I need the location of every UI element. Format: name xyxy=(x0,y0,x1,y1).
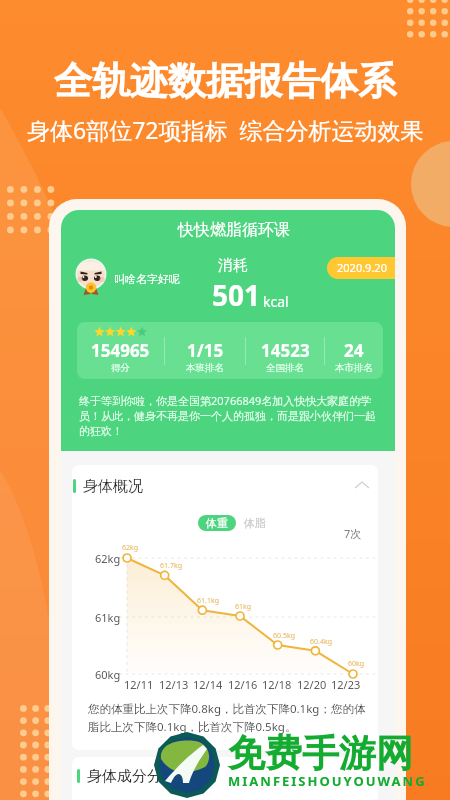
staticText: 60kg xyxy=(95,667,121,682)
staticText: 501 xyxy=(212,276,261,314)
staticText: 12/20 xyxy=(297,677,327,692)
staticText: 61kg xyxy=(95,610,121,625)
staticText: 62kg xyxy=(95,551,121,566)
staticText: 体脂 xyxy=(244,516,266,530)
staticText: 本市排名 xyxy=(335,362,373,374)
staticText: 60.4kg xyxy=(310,637,332,647)
button[interactable]: 身体概况 xyxy=(73,465,370,507)
button[interactable]: 体重 xyxy=(198,515,236,531)
staticText: 身体6部位72项指标 综合分析运动效果 xyxy=(27,114,424,145)
staticText: 身体成分分析 xyxy=(87,767,177,786)
staticText: 24 xyxy=(344,339,364,362)
staticText: 61.1kg xyxy=(197,596,219,606)
staticText: MIANFEISHOUYOUWANG xyxy=(228,772,427,790)
staticText: 12/18 xyxy=(262,677,292,692)
button[interactable]: 2020.9.20 xyxy=(337,260,387,275)
button[interactable]: 体脂 xyxy=(242,515,268,531)
staticText: 61.7kg xyxy=(160,561,182,571)
staticText: 终于等到你啦，你是全国第20766849名加入快快大家庭的学员！从此，健身不再是… xyxy=(79,393,381,438)
staticText: 12/13 xyxy=(159,677,189,692)
staticText: 7次 xyxy=(344,526,362,541)
staticText: 叫啥名字好呢 xyxy=(114,272,180,286)
staticText: 消耗 xyxy=(218,256,248,275)
staticText: 2020.9.20 xyxy=(337,260,387,275)
staticText: 14523 xyxy=(261,339,310,362)
other: Collapse section xyxy=(354,478,370,494)
staticText: 60kg xyxy=(348,659,365,669)
staticText: 12/16 xyxy=(228,677,258,692)
staticText: 62kg xyxy=(122,543,139,553)
staticText: 得分 xyxy=(111,362,130,374)
staticText: 12/23 xyxy=(331,677,361,692)
staticText: 12/11 xyxy=(124,677,154,692)
staticText: 您的体重比上次下降0.8kg，比首次下降0.1kg；您的体脂比上次下降0.1kg… xyxy=(88,701,375,735)
staticText: 全轨迹数据报告体系 xyxy=(54,57,396,105)
staticText: 1/15 xyxy=(187,339,224,362)
staticText: kcal xyxy=(263,292,289,311)
staticText: 全国排名 xyxy=(266,362,304,374)
staticText: 身体概况 xyxy=(83,477,143,496)
staticText: 本班排名 xyxy=(186,362,224,374)
staticText: 快快燃脂循环课 xyxy=(67,220,395,240)
staticText: 免费手游网 xyxy=(228,730,413,777)
staticText: 60.5kg xyxy=(273,631,295,641)
staticText: 体重 xyxy=(206,516,228,530)
staticText: 154965 xyxy=(91,339,150,362)
button[interactable]: 身体成分分析 xyxy=(77,757,366,795)
staticText: 12/14 xyxy=(193,677,223,692)
staticText: 61kg xyxy=(235,602,252,612)
